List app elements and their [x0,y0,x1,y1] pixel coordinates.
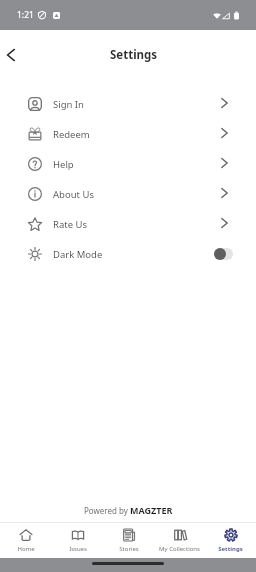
staticText: Powered by [84,505,130,516]
staticText: Settings [110,47,158,63]
staticText: Sign In [53,98,84,111]
button[interactable]: Issues [52,522,103,558]
staticText: Help [53,158,74,171]
button[interactable]: Sign In [0,89,256,119]
staticText: 1:21 [17,9,34,21]
staticText: Home [17,545,35,553]
button[interactable]: About Us [0,179,256,209]
staticText: Issues [69,545,87,553]
staticText: Redeem [53,128,90,141]
button[interactable]: Home [0,522,52,558]
button[interactable]: Stories [103,522,154,558]
button[interactable]: Rate Us [0,209,256,239]
staticText: Settings [218,545,243,553]
button[interactable]: Redeem [0,119,256,149]
staticText: My Collections [159,545,200,553]
staticText: Dark Mode [53,248,103,261]
button[interactable]: Settings [205,522,256,558]
staticText: About Us [53,188,94,201]
button[interactable]: My Collections [154,522,205,558]
button[interactable]: Back [0,44,22,66]
staticText: Rate Us [53,218,87,231]
staticText: MAGZTER [130,504,173,516]
staticText: Stories [119,545,139,553]
button[interactable]: Dark Mode [0,239,256,269]
button[interactable]: Help [0,149,256,179]
